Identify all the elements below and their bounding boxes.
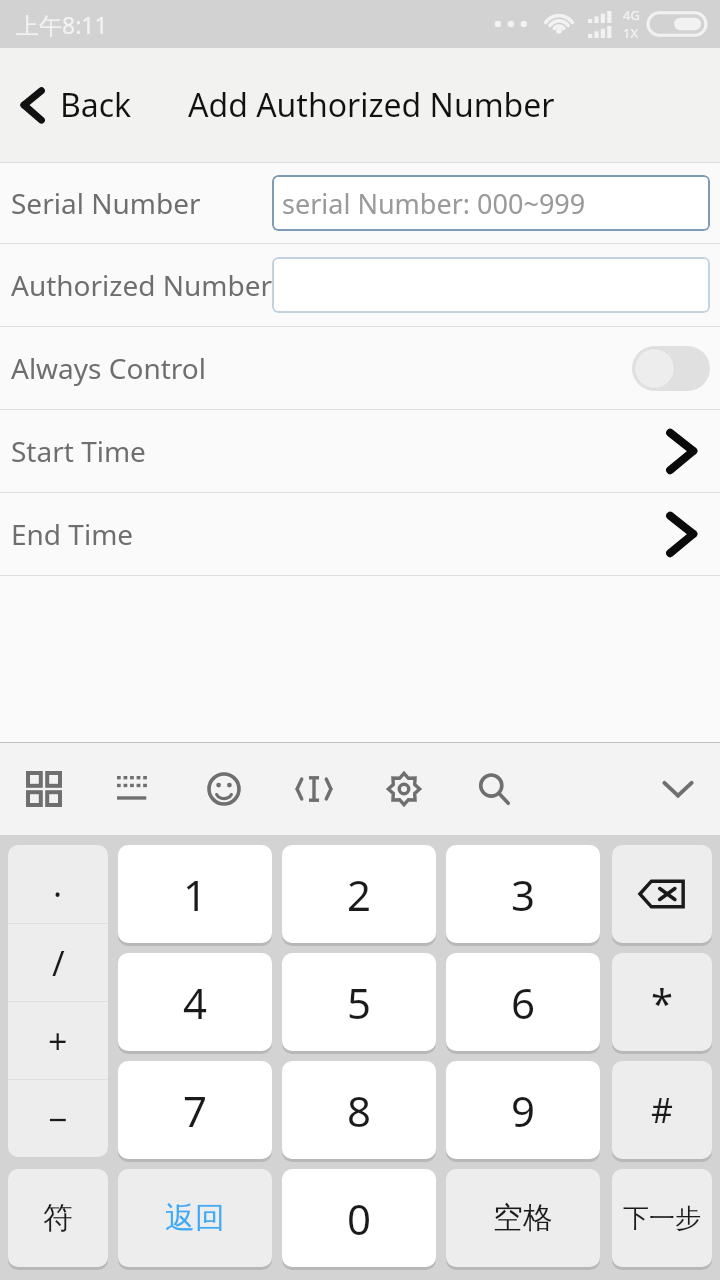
staticText: # [651, 1087, 673, 1133]
staticText: Authorized Number [11, 266, 273, 304]
button[interactable]: Hide keyboard [648, 753, 708, 825]
staticText: 上午8:11 [16, 9, 108, 40]
staticText: Always Control [11, 349, 207, 387]
button[interactable]: Start Time [0, 410, 720, 492]
staticText: 符 [43, 1199, 73, 1237]
button[interactable]: Authorized Number [0, 244, 720, 326]
button[interactable]: 返回 [118, 1169, 272, 1267]
staticText: 1 [183, 866, 208, 923]
button[interactable]: − [8, 1080, 108, 1157]
button[interactable]: # [612, 1061, 712, 1159]
button[interactable]: 空格 [446, 1169, 600, 1267]
staticText: / [52, 940, 65, 986]
staticText: 2 [347, 866, 372, 923]
button[interactable]: Always Control toggle [632, 346, 710, 391]
button[interactable]: . [8, 845, 108, 923]
button[interactable]: Back [0, 75, 146, 135]
staticText: 7 [183, 1082, 208, 1139]
button[interactable]: 7 [118, 1061, 272, 1159]
button[interactable]: Backspace [612, 845, 712, 943]
staticText: 5 [347, 974, 372, 1031]
button[interactable]: End Time [0, 493, 720, 575]
staticText: − [48, 1096, 68, 1142]
button[interactable]: 下一步 [612, 1169, 712, 1267]
button[interactable]: Search [464, 753, 524, 825]
button[interactable]: 8 [282, 1061, 436, 1159]
staticText: 空格 [493, 1199, 553, 1237]
button[interactable]: 符 [8, 1169, 108, 1267]
staticText: serial Number: 000~999 [282, 185, 586, 222]
staticText: * [651, 975, 674, 1029]
staticText: 8 [347, 1082, 372, 1139]
staticText: Add Authorized Number [188, 83, 555, 127]
other: Open End Time [664, 510, 698, 558]
staticText: 9 [511, 1082, 536, 1139]
button[interactable]: + [8, 1002, 108, 1079]
button[interactable]: 1 [118, 845, 272, 943]
button[interactable]: 2 [282, 845, 436, 943]
button[interactable]: 6 [446, 953, 600, 1051]
staticText: 1X [623, 24, 639, 42]
button[interactable]: 0 [282, 1169, 436, 1267]
staticText: Back [60, 83, 132, 127]
button[interactable]: Apps [14, 753, 74, 825]
staticText: 3 [511, 866, 536, 923]
button[interactable]: * [612, 953, 712, 1051]
button[interactable]: Keyboard [104, 753, 164, 825]
staticText: 返回 [165, 1199, 225, 1237]
button[interactable]: 5 [282, 953, 436, 1051]
staticText: . [53, 861, 63, 907]
button[interactable]: 9 [446, 1061, 600, 1159]
button[interactable]: 4 [118, 953, 272, 1051]
button[interactable]: Settings [374, 753, 434, 825]
staticText: 下一步 [623, 1202, 701, 1235]
staticText: Serial Number [11, 184, 201, 222]
button[interactable]: / [8, 924, 108, 1001]
staticText: 4G [623, 6, 640, 24]
button[interactable]: 3 [446, 845, 600, 943]
button[interactable]: Cursor [284, 753, 344, 825]
button[interactable]: Serial Number [0, 163, 720, 243]
button[interactable]: Emoji [194, 753, 254, 825]
other: Open Start Time [664, 427, 698, 475]
staticText: 0 [347, 1190, 372, 1247]
staticText: + [48, 1018, 68, 1064]
button[interactable]: Always Control [0, 327, 720, 409]
staticText: 4 [183, 974, 208, 1031]
staticText: 6 [511, 974, 536, 1031]
staticText: End Time [11, 515, 134, 553]
staticText: Start Time [11, 432, 146, 470]
